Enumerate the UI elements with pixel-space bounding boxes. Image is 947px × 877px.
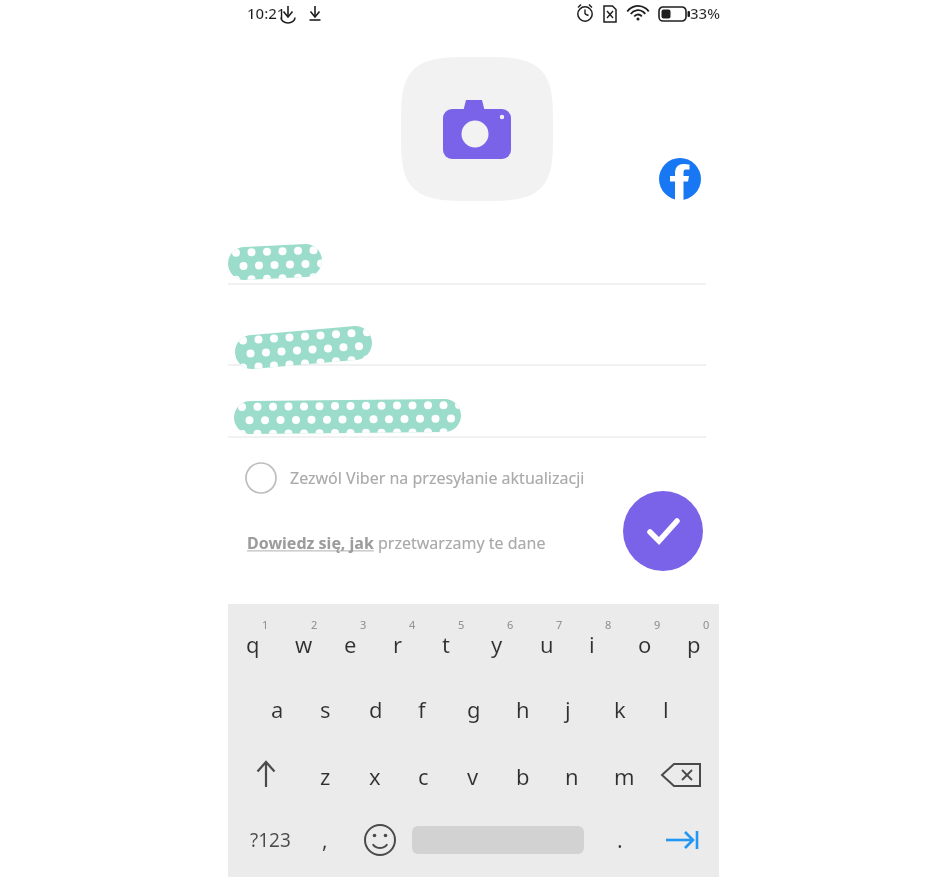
staticText: 1 [262, 617, 269, 632]
staticText: 8 [605, 617, 612, 632]
staticText: x [369, 761, 381, 791]
button[interactable]: , [306, 815, 350, 865]
button[interactable]: x [351, 747, 400, 803]
staticText: f [418, 694, 426, 724]
staticText: l [663, 694, 669, 724]
staticText: p [687, 629, 701, 659]
button[interactable]: j [547, 680, 596, 736]
button[interactable]: f [400, 680, 449, 736]
button[interactable]: w [277, 610, 326, 666]
button[interactable]: m [596, 747, 645, 803]
staticText: . [617, 826, 623, 855]
staticText: e [344, 629, 357, 659]
staticText: 10:21 [247, 3, 286, 23]
staticText: y [491, 629, 503, 659]
button[interactable]: Confirm [623, 491, 703, 571]
staticText: g [467, 694, 481, 724]
button[interactable]: n [547, 747, 596, 803]
staticText: u [540, 629, 554, 659]
button[interactable]: z [302, 747, 351, 803]
staticText: 6 [507, 617, 514, 632]
button[interactable]: Backspace [654, 747, 710, 803]
button[interactable]: Dowiedz się, jak przetwarzamy te dane [247, 532, 592, 560]
button[interactable]: Next [656, 815, 712, 865]
button[interactable]: ?123 [238, 815, 312, 865]
button[interactable]: Shift [238, 747, 294, 803]
staticText: ?123 [250, 827, 291, 853]
staticText: t [442, 629, 450, 659]
button[interactable]: h [498, 680, 547, 736]
staticText: i [589, 629, 595, 659]
staticText: n [565, 761, 579, 791]
button[interactable]: Facebook [659, 158, 701, 200]
button[interactable]: l [645, 680, 694, 736]
staticText: 3 [360, 617, 367, 632]
staticText: z [320, 761, 331, 791]
button[interactable]: p [669, 610, 718, 666]
button[interactable]: c [400, 747, 449, 803]
button[interactable]: y [473, 610, 522, 666]
button[interactable]: i [571, 610, 620, 666]
staticText: m [614, 761, 635, 791]
staticText: o [638, 629, 652, 659]
staticText: Zezwól Viber na przesyłanie aktualizacji [290, 467, 585, 489]
staticText: b [516, 761, 530, 791]
button[interactable]: d [351, 680, 400, 736]
button[interactable]: e [326, 610, 375, 666]
button[interactable]: r [375, 610, 424, 666]
button[interactable]: Zezwól Viber na przesyłanie aktualizacji [240, 455, 660, 501]
button[interactable]: u [522, 610, 571, 666]
staticText: d [369, 694, 383, 724]
button[interactable]: k [596, 680, 645, 736]
staticText: k [614, 694, 626, 724]
staticText: 33% [690, 3, 720, 23]
staticText: a [271, 694, 284, 724]
staticText: 9 [654, 617, 661, 632]
staticText: w [295, 629, 313, 659]
staticText: v [467, 761, 479, 791]
staticText: 2 [311, 617, 318, 632]
button[interactable]: a [253, 680, 302, 736]
staticText: Dowiedz się, jak przetwarzamy te dane [247, 532, 546, 554]
staticText: j [565, 694, 571, 724]
staticText: h [516, 694, 530, 724]
button[interactable]: s [302, 680, 351, 736]
button[interactable]: t [424, 610, 473, 666]
staticText: c [418, 761, 429, 791]
button[interactable]: q [228, 610, 277, 666]
staticText: r [393, 629, 403, 659]
staticText: , [322, 826, 328, 855]
staticText: 5 [458, 617, 465, 632]
button[interactable]: v [449, 747, 498, 803]
button[interactable]: o [620, 610, 669, 666]
button[interactable]: g [449, 680, 498, 736]
staticText: s [320, 694, 331, 724]
staticText: q [246, 629, 260, 659]
staticText: 7 [556, 617, 563, 632]
staticText: 0 [703, 617, 710, 632]
staticText: 4 [409, 617, 416, 632]
button[interactable]: . [600, 815, 644, 865]
button[interactable]: Emoji [355, 815, 405, 865]
button[interactable]: Change profile photo [401, 57, 553, 201]
button[interactable]: b [498, 747, 547, 803]
